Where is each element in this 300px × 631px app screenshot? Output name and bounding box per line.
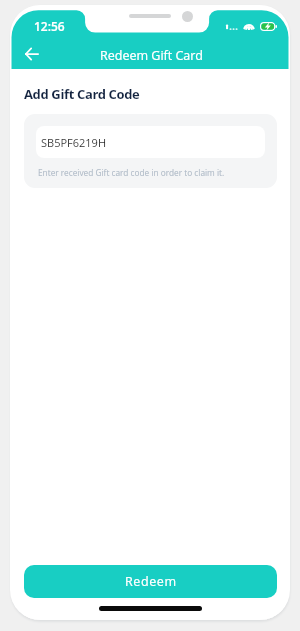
staticText: Add Gift Card Code [24, 85, 140, 103]
button[interactable]: Back [17, 39, 47, 69]
button[interactable]: Redeem [24, 565, 277, 598]
staticText: Enter received Gift card code in order t… [38, 167, 225, 178]
button[interactable]: SB5PF6219H [36, 126, 265, 158]
staticText: Redeem Gift Card [100, 47, 203, 64]
staticText: SB5PF6219H [41, 135, 107, 150]
staticText: 12:56 [34, 18, 65, 34]
staticText: Redeem [125, 573, 177, 590]
